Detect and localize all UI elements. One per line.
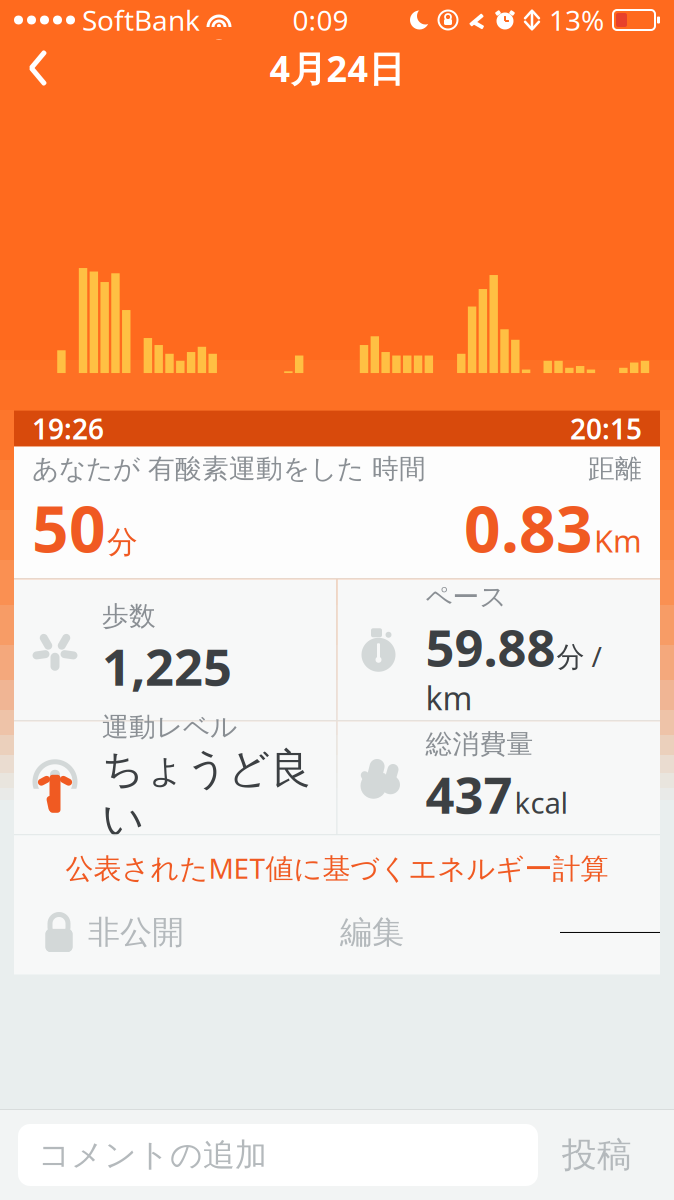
staticText: 投稿	[562, 1134, 632, 1176]
staticText: あなたが 有酸素運動をした 時間	[32, 452, 426, 485]
staticText: 437	[425, 760, 512, 828]
button[interactable]: 投稿	[538, 1124, 656, 1186]
staticText: 13%	[549, 1, 604, 39]
staticText: 20:15	[570, 410, 642, 447]
staticText: 0:09	[292, 1, 348, 39]
button[interactable]: 戻る	[8, 42, 68, 94]
staticText: 4月24日	[269, 44, 404, 92]
staticText: ペース	[425, 580, 506, 613]
staticText: 0.83	[464, 485, 593, 570]
staticText: 歩数	[102, 600, 156, 633]
button[interactable]: 公表されたMET値に基づくエネルギー計算	[14, 835, 660, 900]
staticText: 50	[32, 485, 106, 570]
staticText: 59.88	[425, 613, 555, 681]
staticText: 総消費量	[425, 728, 533, 761]
button[interactable]: 編集	[316, 901, 428, 964]
button[interactable]: 非公開	[14, 900, 184, 964]
staticText: kcal	[514, 783, 568, 822]
staticText: 19:26	[32, 410, 104, 447]
staticText: 運動レベル	[102, 711, 237, 743]
staticText: SoftBank	[82, 1, 200, 39]
staticText: 公表されたMET値に基づくエネルギー計算	[65, 849, 608, 886]
staticText: Km	[594, 520, 642, 561]
staticText: km	[425, 677, 472, 719]
staticText: 編集	[340, 913, 404, 952]
staticText: 分	[107, 524, 138, 561]
button[interactable]: コメントの追加	[18, 1124, 538, 1186]
staticText: ちょうど良い	[102, 743, 311, 845]
staticText: 1,225	[102, 632, 232, 700]
staticText: 距離	[588, 452, 642, 485]
staticText: コメントの追加	[38, 1135, 267, 1175]
staticText: 分 /	[556, 637, 601, 675]
staticText: 非公開	[88, 913, 184, 952]
